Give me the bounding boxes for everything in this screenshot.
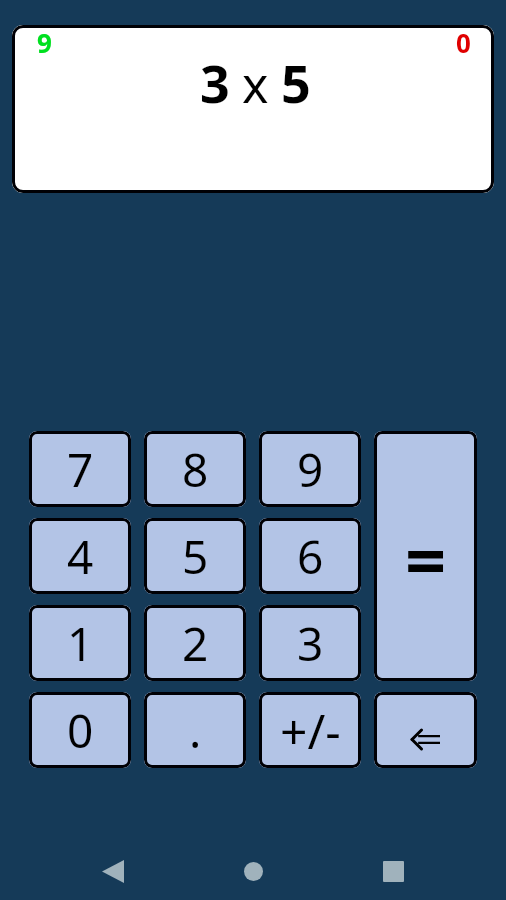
staticText: 0 xyxy=(67,699,94,762)
staticText: 5 xyxy=(281,47,311,118)
staticText: 9 xyxy=(37,25,52,60)
button[interactable]: Home xyxy=(218,836,288,900)
button[interactable]: 0 xyxy=(29,692,131,768)
staticText: 3 xyxy=(297,612,324,675)
button[interactable]: 6 xyxy=(259,518,361,594)
staticText: +/- xyxy=(280,698,341,763)
button[interactable]: 7 xyxy=(29,431,131,507)
button[interactable]: 8 xyxy=(144,431,246,507)
button[interactable]: 1 xyxy=(29,605,131,681)
button[interactable]: 2 xyxy=(144,605,246,681)
button[interactable]: 4 xyxy=(29,518,131,594)
staticText: 5 xyxy=(182,525,209,588)
staticText: x xyxy=(242,50,269,118)
button[interactable]: +/- xyxy=(259,692,361,768)
staticText: 1 xyxy=(67,612,94,675)
staticText: 0 xyxy=(456,25,471,60)
button[interactable]: . xyxy=(144,692,246,768)
button[interactable]: 3 xyxy=(259,605,361,681)
button[interactable]: 9 xyxy=(259,431,361,507)
staticText: 2 xyxy=(182,612,209,675)
button[interactable]: Back xyxy=(78,836,148,900)
button[interactable]: Backspace xyxy=(374,692,477,768)
button[interactable]: = xyxy=(374,431,477,681)
staticText: 4 xyxy=(67,525,94,588)
staticText: 7 xyxy=(67,438,94,501)
staticText: . xyxy=(189,699,202,762)
staticText: 8 xyxy=(182,438,209,501)
button[interactable]: Recent apps xyxy=(358,836,428,900)
staticText: = xyxy=(405,510,447,608)
staticText: 9 xyxy=(297,438,324,501)
staticText: 3 xyxy=(200,47,230,118)
staticText: 6 xyxy=(297,525,324,588)
button[interactable]: 5 xyxy=(144,518,246,594)
